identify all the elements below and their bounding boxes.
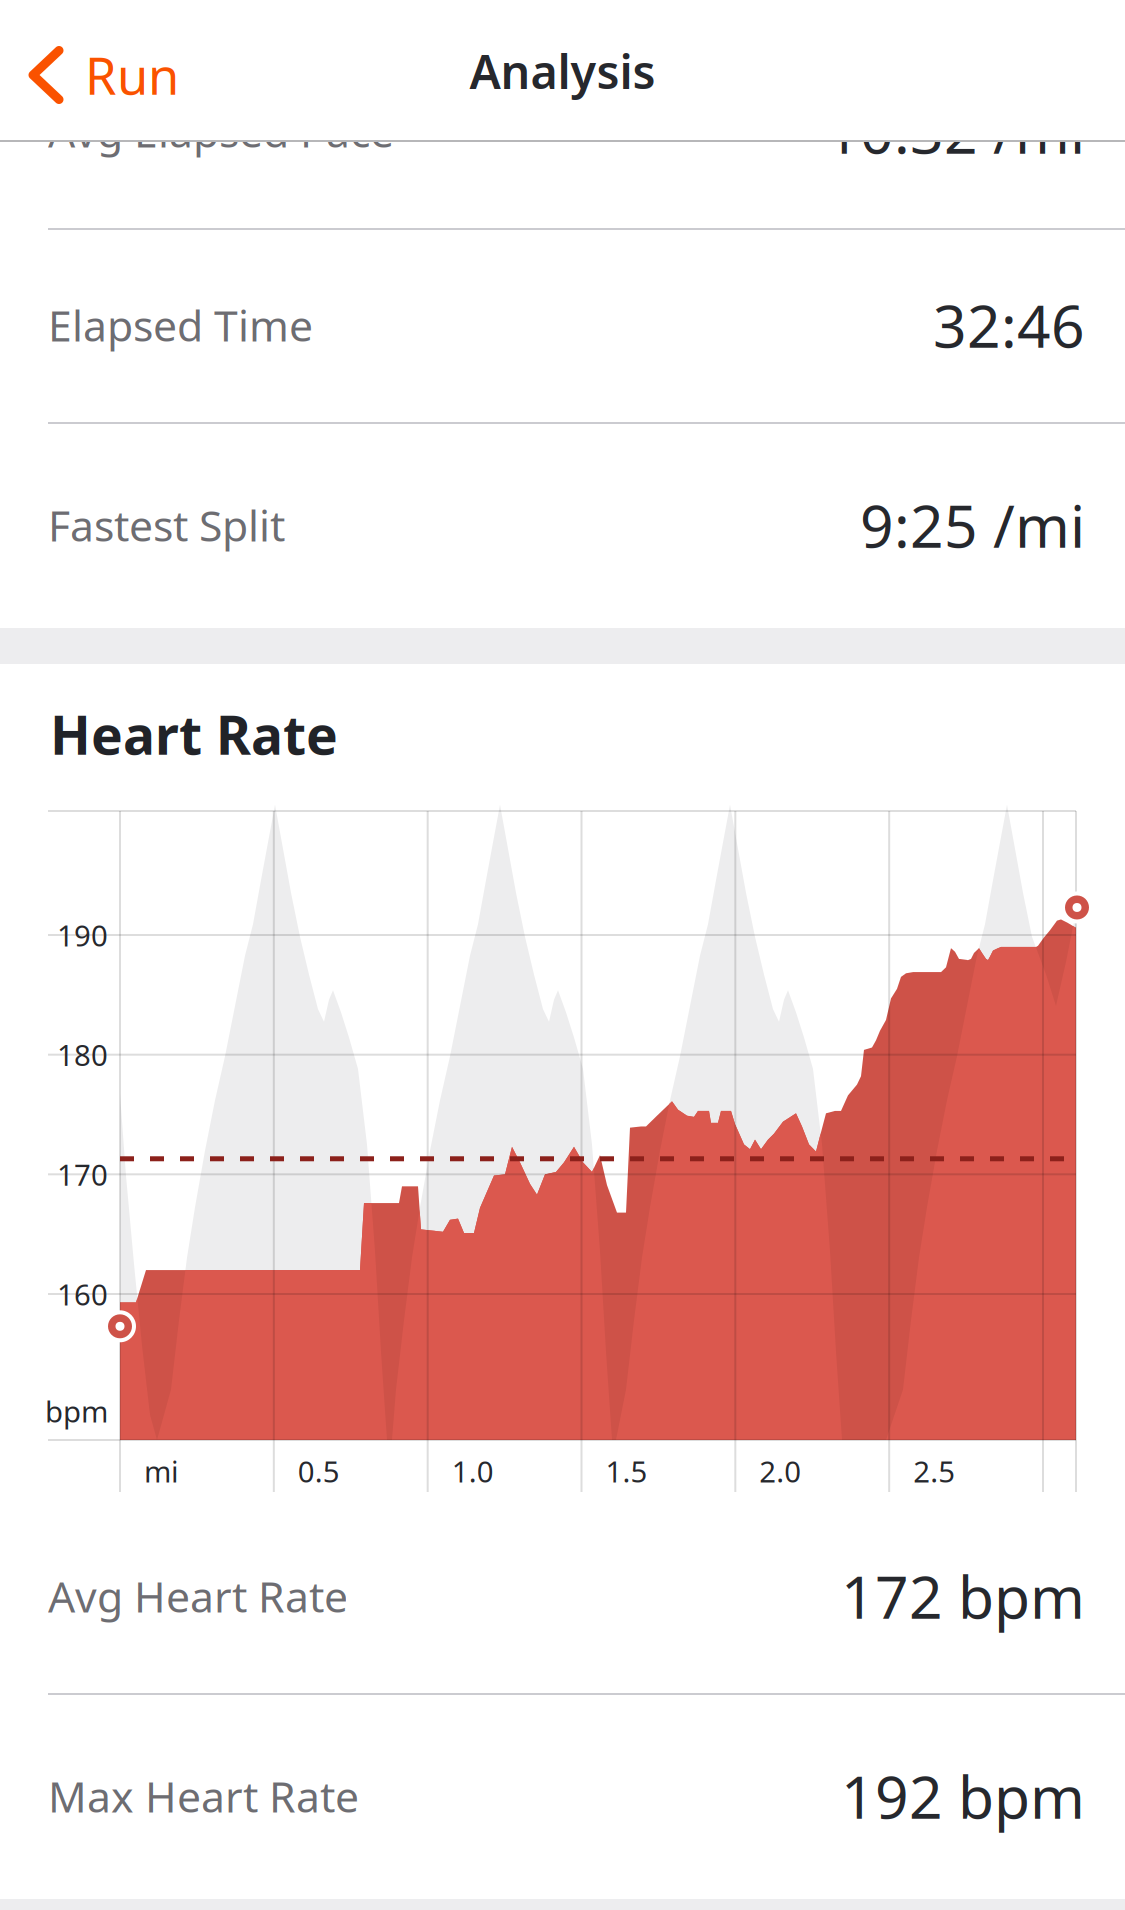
staticText: Avg Heart Rate [48,1568,348,1624]
staticText: Elapsed Time [48,297,313,353]
staticText: Run [85,41,179,109]
staticText: 172 bpm [841,1557,1085,1635]
staticText: 192 bpm [841,1757,1085,1835]
staticText: Fastest Split [48,497,285,553]
staticText: bpm [45,1391,108,1430]
staticText: 32:46 [933,286,1085,364]
staticText: 10:32 /mi [826,92,1085,170]
staticText: 2.0 [759,1451,801,1490]
staticText: Analysis [469,40,655,102]
staticText: 1.5 [605,1451,647,1490]
staticText: Heart Rate [50,699,338,769]
staticText: 170 [57,1155,108,1194]
staticText: 2.5 [913,1451,955,1490]
staticText: 9:25 /mi [860,486,1085,564]
staticText: 160 [57,1274,108,1313]
staticText: 0.5 [298,1451,340,1490]
staticText: 190 [57,915,108,954]
staticText: Max Heart Rate [48,1768,359,1824]
button[interactable]: Run [0,17,203,125]
staticText: Avg Elapsed Pace [48,103,394,159]
staticText: 180 [57,1035,108,1074]
staticText: mi [144,1451,179,1490]
staticText: 1.0 [452,1451,494,1490]
